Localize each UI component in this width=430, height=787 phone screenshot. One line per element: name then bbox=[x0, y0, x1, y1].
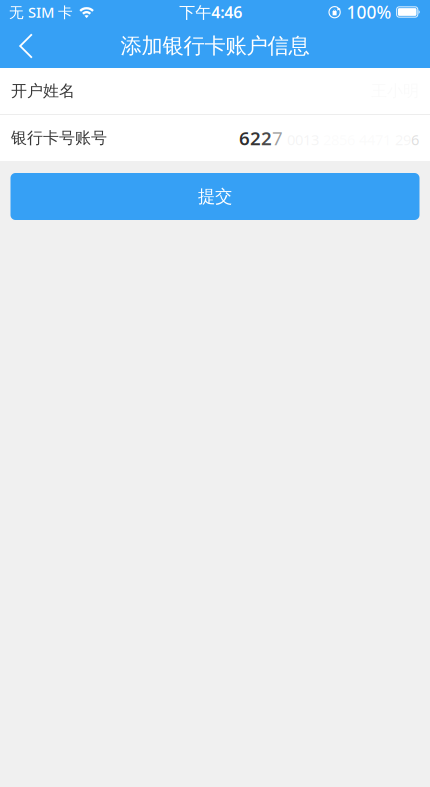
staticText: 6 bbox=[239, 126, 250, 150]
staticText: 2 bbox=[250, 126, 261, 150]
staticText: 添加银行卡账户信息 bbox=[120, 33, 309, 59]
staticText: 7 bbox=[272, 126, 283, 150]
staticText: 开户姓名 bbox=[11, 81, 75, 101]
button[interactable]: 银行卡号账号 bbox=[0, 115, 430, 161]
staticText: 下午4:46 bbox=[179, 1, 242, 23]
staticText: 100% bbox=[347, 0, 392, 23]
button[interactable]: 返回 bbox=[0, 24, 52, 68]
button[interactable]: 提交 bbox=[10, 173, 419, 220]
staticText: 银行卡号账号 bbox=[11, 128, 107, 148]
staticText: 0013 bbox=[283, 130, 319, 149]
staticText: 6 bbox=[411, 130, 419, 149]
staticText: 提交 bbox=[198, 186, 232, 207]
button[interactable]: 开户姓名 bbox=[0, 68, 430, 114]
staticText: 2 bbox=[261, 126, 272, 150]
staticText: 无 SIM 卡 bbox=[9, 2, 73, 22]
